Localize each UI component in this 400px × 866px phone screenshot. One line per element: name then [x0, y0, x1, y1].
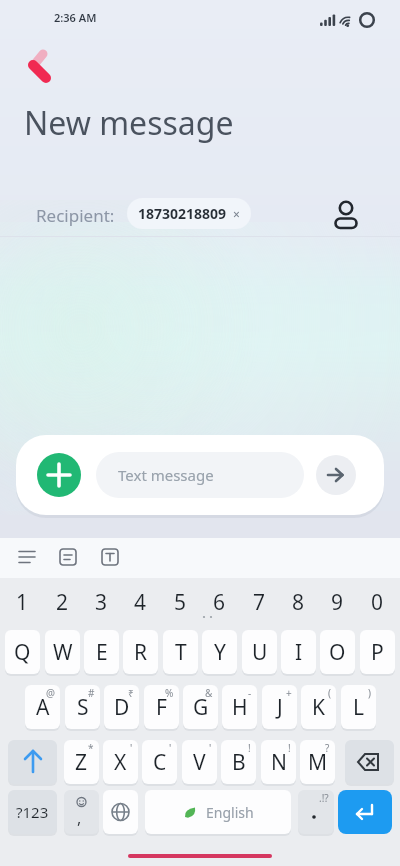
staticText: New message	[24, 101, 234, 145]
staticText: M	[308, 748, 328, 777]
staticText: ×	[233, 206, 240, 222]
staticText: S	[77, 693, 89, 722]
staticText: 2	[56, 588, 69, 616]
staticText: R	[134, 638, 148, 667]
staticText: T	[175, 638, 187, 667]
staticText: (	[328, 686, 331, 700]
staticText: O	[329, 638, 346, 667]
staticText: Recipient:	[36, 204, 115, 227]
staticText: B	[232, 748, 246, 777]
staticText: '	[169, 741, 172, 755]
staticText: W	[53, 638, 73, 667]
staticText: K	[312, 693, 325, 722]
staticText: !	[288, 741, 291, 755]
staticText: @	[46, 686, 55, 700]
staticText: '	[209, 741, 212, 755]
staticText: '	[130, 741, 133, 755]
staticText: Text message	[118, 465, 214, 485]
staticText: L	[353, 693, 365, 722]
staticText: N	[271, 748, 287, 777]
staticText: Z	[75, 748, 88, 777]
staticText: *	[88, 741, 94, 755]
staticText: 18730218809	[138, 204, 227, 223]
staticText: F	[156, 693, 167, 722]
staticText: &	[205, 686, 213, 700]
staticText: 1	[16, 588, 29, 616]
staticText: +	[286, 686, 292, 700]
staticText: A	[36, 693, 50, 722]
staticText: V	[193, 748, 206, 777]
staticText: 6	[213, 588, 226, 616]
staticText: 5	[174, 588, 187, 616]
staticText: C	[153, 748, 167, 777]
staticText: X	[114, 748, 127, 777]
staticText: ?	[325, 741, 330, 755]
staticText: 2:36 AM	[54, 10, 97, 25]
staticText: E	[96, 638, 108, 667]
staticText: J	[277, 693, 283, 722]
staticText: #	[88, 686, 95, 700]
staticText: 3	[95, 588, 108, 616]
staticText: 7	[253, 588, 266, 616]
staticText: %	[165, 686, 174, 700]
staticText: 8	[292, 588, 305, 616]
staticText: 4	[134, 588, 147, 616]
staticText: ,	[77, 807, 82, 829]
staticText: ₹	[128, 686, 134, 700]
staticText: 0	[371, 588, 384, 616]
staticText: English	[206, 803, 254, 822]
staticText: !	[248, 741, 251, 755]
staticText: -	[248, 686, 252, 700]
staticText: )	[368, 686, 371, 700]
staticText: P	[371, 638, 384, 667]
staticText: Y	[214, 638, 226, 667]
staticText: 9	[331, 588, 344, 616]
staticText: I	[295, 638, 303, 667]
staticText: D	[114, 693, 130, 722]
staticText: G	[193, 693, 209, 722]
staticText: Q	[14, 638, 31, 667]
staticText: U	[252, 638, 268, 667]
staticText: ?123	[16, 802, 49, 822]
staticText: .!?	[319, 791, 329, 805]
staticText: H	[232, 693, 248, 722]
